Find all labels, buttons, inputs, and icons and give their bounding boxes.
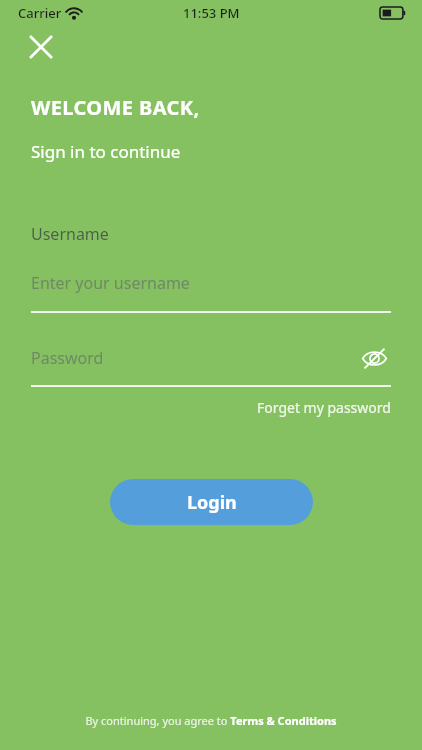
button[interactable]: Password [31,347,391,387]
staticText: WELCOME BACK, [31,94,200,121]
button[interactable]: By continuing, you agree to Terms & Cond… [85,713,337,728]
staticText: Username [31,223,109,245]
staticText: Carrier [18,4,62,22]
staticText: Sign in to continue [31,140,181,163]
staticText: Login [187,490,237,515]
staticText: 11:53 PM [183,4,240,22]
button[interactable]: Login [110,479,313,525]
staticText: Enter your username [31,272,190,294]
button[interactable]: Close [22,28,60,66]
staticText: By continuing, you agree to Terms & Cond… [85,713,337,728]
staticText: Forget my password [257,398,391,417]
button[interactable]: Enter your username [31,272,391,313]
staticText: Password [31,347,104,369]
button[interactable]: Show password [357,341,391,375]
button[interactable]: Forget my password [257,398,391,417]
